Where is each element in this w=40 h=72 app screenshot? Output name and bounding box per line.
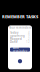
button[interactable]: Flagged bbox=[10, 38, 30, 40]
staticText: 2 bbox=[28, 37, 30, 41]
staticText: Upcoming bbox=[10, 34, 25, 37]
button[interactable]: Profile bbox=[18, 59, 22, 63]
staticText: Today bbox=[10, 31, 18, 34]
staticText: Your reminders bbox=[9, 26, 31, 29]
staticText: Add reminder bbox=[13, 46, 27, 53]
button[interactable]: Done bbox=[10, 41, 30, 43]
button[interactable]: Add reminder bbox=[10, 48, 30, 52]
staticText: 9 bbox=[28, 34, 30, 37]
staticText: 12 bbox=[26, 40, 30, 44]
staticText: 4 bbox=[28, 31, 30, 34]
staticText: Flagged bbox=[10, 37, 22, 41]
staticText: Done bbox=[10, 40, 18, 44]
button[interactable]: Upcoming bbox=[10, 34, 30, 37]
button[interactable]: Today bbox=[10, 31, 30, 34]
staticText: REMEMBER TASKS bbox=[2, 14, 38, 19]
